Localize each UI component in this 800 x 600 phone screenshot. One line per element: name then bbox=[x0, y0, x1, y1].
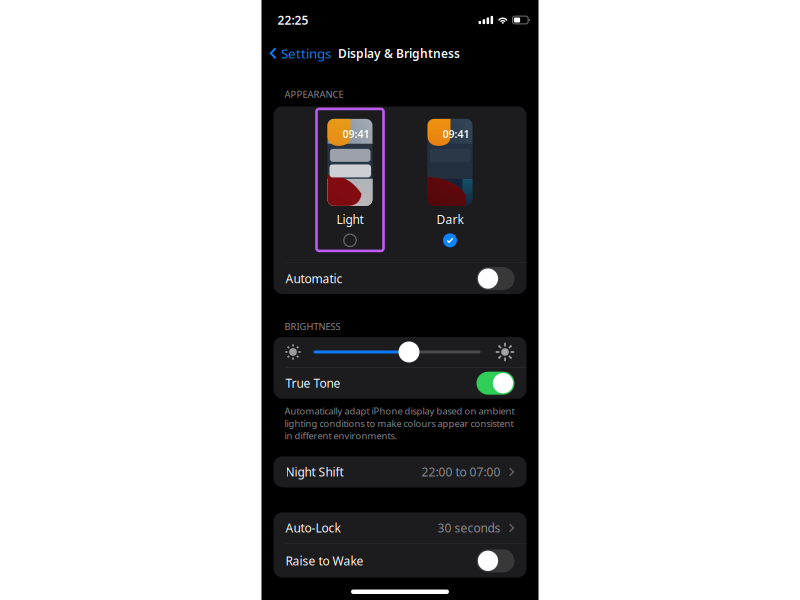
staticText: Dark bbox=[436, 211, 463, 227]
staticText: Display & Brightness bbox=[338, 45, 460, 61]
staticText: 09:41 bbox=[442, 127, 469, 141]
staticText: 22:25 bbox=[277, 12, 308, 28]
staticText: 22:00 to 07:00 bbox=[422, 464, 501, 480]
staticText: Automatic bbox=[285, 271, 342, 286]
staticText: Light bbox=[336, 211, 363, 227]
staticText: Automatically adapt iPhone display based… bbox=[284, 405, 514, 442]
button[interactable]: True Tone bbox=[273, 368, 526, 399]
staticText: True Tone bbox=[285, 375, 340, 391]
button[interactable]: Night Shift bbox=[273, 456, 526, 487]
staticText: Auto-Lock bbox=[285, 520, 340, 536]
staticText: APPEARANCE bbox=[284, 88, 343, 100]
button[interactable]: 09:41 bbox=[316, 119, 383, 251]
staticText: 30 seconds bbox=[438, 520, 501, 536]
button[interactable]: Auto-Lock bbox=[273, 512, 526, 543]
button[interactable]: 09:41 bbox=[416, 119, 483, 251]
button[interactable]: Settings bbox=[261, 39, 333, 67]
staticText: BRIGHTNESS bbox=[284, 320, 340, 332]
button[interactable]: Raise to Wake bbox=[273, 544, 526, 578]
staticText: 09:41 bbox=[342, 127, 369, 141]
staticText: Settings bbox=[281, 44, 331, 62]
staticText: Night Shift bbox=[285, 464, 343, 480]
button[interactable]: Automatic bbox=[273, 263, 526, 294]
staticText: Raise to Wake bbox=[285, 553, 363, 569]
